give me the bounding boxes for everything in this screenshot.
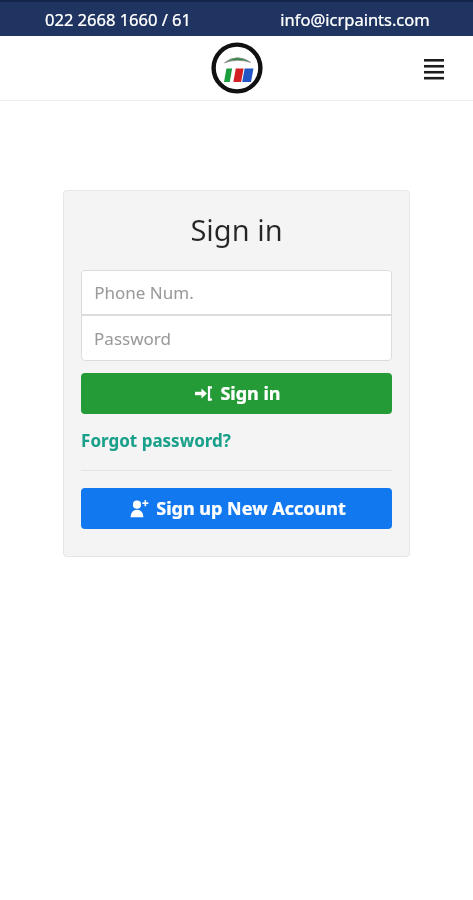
button[interactable]: ICR Paints home <box>211 42 263 94</box>
staticText: info@icrpaints.com <box>280 8 430 30</box>
staticText: 022 2668 1660 / 61 <box>45 8 191 30</box>
staticText: Phone Num. <box>94 281 194 304</box>
staticText: Sign in <box>190 210 283 249</box>
button[interactable]: Forgot password? <box>81 427 231 454</box>
button[interactable]: info@icrpaints.com <box>236 8 473 30</box>
staticText: Sign up New Account <box>156 496 346 521</box>
button[interactable]: Sign up New Account <box>81 488 392 529</box>
button[interactable]: Password <box>81 315 392 361</box>
button[interactable]: 022 2668 1660 / 61 <box>0 8 236 30</box>
staticText: Forgot password? <box>81 429 231 452</box>
button[interactable]: Sign in <box>81 373 392 414</box>
staticText: Password <box>94 327 171 350</box>
staticText: Sign in <box>220 381 281 406</box>
button[interactable]: Menu <box>417 51 451 85</box>
button[interactable]: Phone Num. <box>81 270 392 315</box>
